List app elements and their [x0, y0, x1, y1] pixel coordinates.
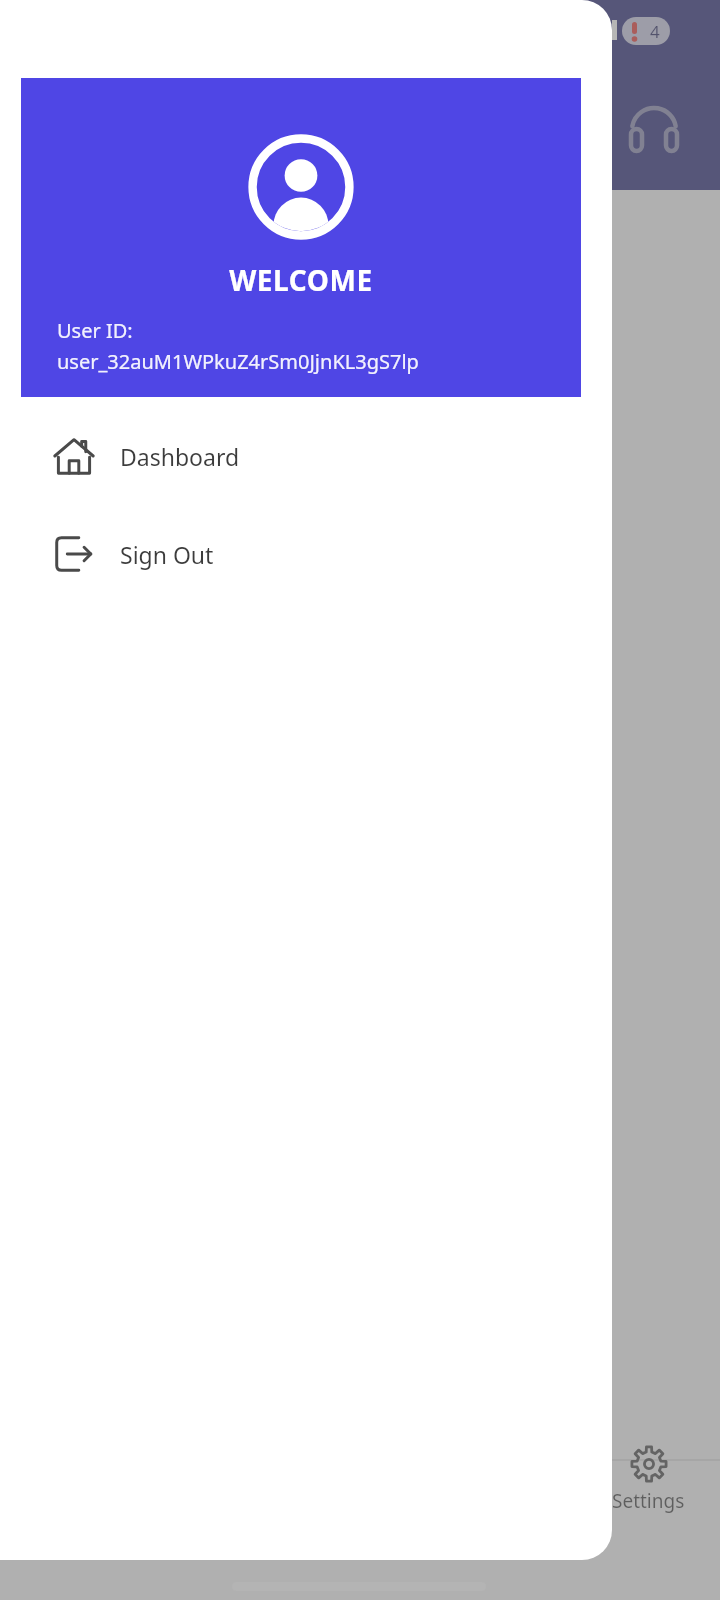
button[interactable]: Sign Out: [0, 505, 612, 603]
button[interactable]: Settings: [608, 1440, 688, 1540]
staticText: Sign Out: [120, 539, 214, 570]
staticText: 4: [650, 20, 660, 43]
staticText: WELCOME: [21, 261, 581, 299]
staticText: user_32auM1WPkuZ4rSm0JjnKL3gS7lp: [57, 348, 419, 375]
staticText: Settings: [612, 1488, 685, 1514]
staticText: Dashboard: [120, 441, 240, 472]
button[interactable]: Dashboard: [0, 407, 612, 505]
staticText: User ID:: [57, 317, 133, 344]
button[interactable]: Audio: [624, 98, 684, 158]
